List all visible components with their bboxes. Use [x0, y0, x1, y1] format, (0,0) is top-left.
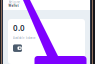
staticText: Wallet [8, 4, 18, 7]
staticText: Welcome [8, 0, 20, 4]
staticText: 0.0 [13, 22, 25, 33]
staticText: Available balance [13, 36, 36, 40]
